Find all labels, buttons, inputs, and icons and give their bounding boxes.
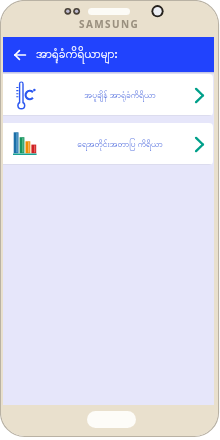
button[interactable]: အပူချိန် အာရုံခံကိရိယာ — [3, 74, 213, 116]
staticText: SAMSUNG — [79, 17, 140, 31]
staticText: အပူချိန် အာရုံခံကိရိယာ — [84, 89, 156, 102]
staticText: အာရုံခံကိရိယာများ — [36, 46, 118, 64]
staticText: ရေအတိုင်းအတာပြ ကိရိယာ — [77, 138, 163, 151]
button[interactable]: ရေအတိုင်းအတာပြ ကိရိယာ — [3, 123, 213, 165]
button[interactable]: Back — [3, 37, 36, 72]
